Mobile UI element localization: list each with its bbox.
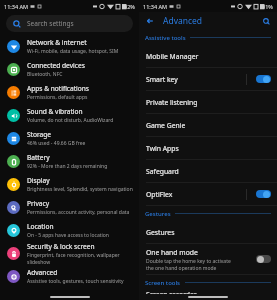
staticText: Permissions, default apps	[27, 94, 88, 101]
button[interactable]: Advanced	[0, 265, 139, 288]
staticText: 91%	[262, 3, 273, 10]
staticText: Screen tools	[145, 279, 181, 287]
staticText: Safeguard	[146, 167, 179, 176]
staticText: 92% - More than 2 days remaining	[27, 163, 108, 170]
button[interactable]: Privacy	[0, 196, 139, 219]
button[interactable]: Off	[256, 255, 271, 263]
staticText: Battery	[27, 153, 50, 162]
staticText: Game Genie	[146, 121, 186, 130]
staticText: Volume, do not disturb, AudioWizard	[27, 117, 114, 124]
staticText: Twin Apps	[146, 144, 179, 153]
staticText: Double tap the home key to activate the …	[146, 258, 236, 271]
button[interactable]: One hand mode	[139, 244, 277, 274]
staticText: Permissions, account activity, personal …	[27, 209, 130, 216]
staticText: Display	[27, 176, 50, 185]
button[interactable]: Game Genie	[139, 114, 277, 136]
button[interactable]: Private listening	[139, 91, 277, 113]
staticText: Gestures	[145, 210, 171, 218]
button[interactable]: Search settings	[6, 15, 133, 32]
button[interactable]: Back	[144, 15, 156, 27]
staticText: Network & internet	[27, 38, 87, 47]
button[interactable]: OptiFlex	[139, 183, 277, 205]
staticText: 11:34 AM	[143, 3, 167, 10]
staticText: Assistive tools, gestures, touch sensiti…	[27, 278, 124, 285]
button[interactable]: Safeguard	[139, 160, 277, 182]
staticText: 46% used - 49.66 GB free	[27, 140, 86, 147]
staticText: Storage	[27, 130, 52, 139]
staticText: Brightness level, Splendid, system navig…	[27, 186, 133, 193]
button[interactable]: Smart key	[139, 68, 277, 90]
button[interactable]: Battery	[0, 150, 139, 173]
staticText: Smart key	[146, 75, 178, 84]
button[interactable]: Search	[260, 15, 272, 27]
button[interactable]: Gestures	[139, 221, 277, 243]
staticText: Apps & notifications	[27, 84, 90, 93]
staticText: Search settings	[27, 19, 74, 28]
staticText: Gestures	[146, 228, 175, 237]
staticText: Location	[27, 222, 54, 231]
staticText: OptiFlex	[146, 190, 173, 199]
staticText: Connected devices	[27, 61, 85, 70]
staticText: One hand mode	[146, 248, 198, 257]
button[interactable]: Screen recorder	[139, 290, 277, 294]
staticText: Wi-Fi, mobile, data usage, hotspot, SIM	[27, 48, 119, 55]
button[interactable]: Sound & vibration	[0, 104, 139, 127]
button[interactable]: On	[256, 75, 271, 83]
staticText: Security & lock screen	[27, 242, 95, 251]
button[interactable]: Location	[0, 219, 139, 242]
button[interactable]: On	[256, 190, 271, 198]
staticText: Bluetooth, NFC	[27, 71, 63, 78]
staticText: Fingerprint, face recognition, wallpaper…	[27, 252, 135, 265]
button[interactable]: Apps & notifications	[0, 81, 139, 104]
staticText: Privacy	[27, 199, 49, 208]
button[interactable]: Mobile Manager	[139, 45, 277, 67]
staticText: On - 5 apps have access to location	[27, 232, 109, 239]
staticText: Advanced	[163, 15, 203, 27]
button[interactable]: Security & lock screen	[0, 242, 139, 265]
staticText: Private listening	[146, 98, 198, 107]
staticText: 11:34 AM	[4, 3, 28, 10]
staticText: 92%	[124, 3, 135, 10]
staticText: Assistive tools	[145, 34, 186, 42]
button[interactable]: Storage	[0, 127, 139, 150]
button[interactable]: Twin Apps	[139, 137, 277, 159]
staticText: Sound & vibration	[27, 107, 83, 116]
staticText: Mobile Manager	[146, 52, 199, 61]
staticText: Advanced	[27, 268, 58, 277]
staticText: Screen recorder	[146, 290, 197, 294]
button[interactable]: Display	[0, 173, 139, 196]
button[interactable]: Network & internet	[0, 35, 139, 58]
button[interactable]: Connected devices	[0, 58, 139, 81]
